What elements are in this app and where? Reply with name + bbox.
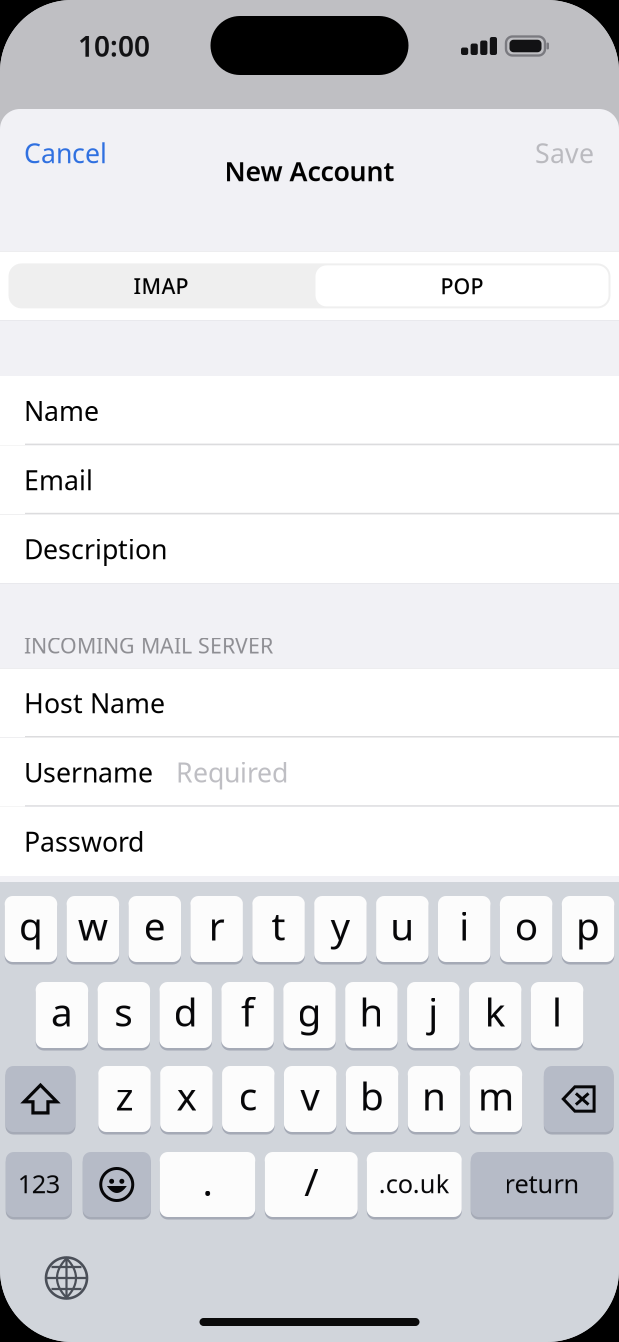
button[interactable]: Emoji xyxy=(83,1152,151,1219)
staticText: j xyxy=(428,986,438,1037)
button[interactable]: o xyxy=(500,896,552,964)
staticText: e xyxy=(144,900,166,951)
staticText: s xyxy=(114,986,133,1037)
staticText: c xyxy=(239,1070,258,1121)
button[interactable]: g xyxy=(283,982,336,1050)
button[interactable]: k xyxy=(469,982,521,1050)
staticText: v xyxy=(300,1070,320,1121)
staticText: r xyxy=(209,900,225,951)
button[interactable]: Save xyxy=(517,130,619,176)
button[interactable]: y xyxy=(314,896,367,964)
button[interactable]: . xyxy=(160,1152,255,1219)
staticText: i xyxy=(459,900,469,951)
button[interactable]: v xyxy=(284,1066,336,1134)
staticText: t xyxy=(271,900,285,951)
button[interactable]: Email xyxy=(0,445,619,514)
staticText: / xyxy=(304,1155,318,1207)
button[interactable]: Next keyboard xyxy=(46,1257,87,1298)
button[interactable]: j xyxy=(407,982,459,1050)
staticText: IMAP xyxy=(133,272,188,300)
button[interactable]: Name xyxy=(0,376,619,445)
staticText: Host Name xyxy=(24,685,165,721)
staticText: u xyxy=(390,900,414,951)
button[interactable]: x xyxy=(160,1066,213,1134)
button[interactable]: h xyxy=(345,982,398,1050)
button[interactable]: n xyxy=(408,1066,460,1134)
staticText: 10:00 xyxy=(78,27,150,65)
staticText: p xyxy=(576,900,600,951)
button[interactable]: Shift xyxy=(5,1066,75,1134)
button[interactable]: Password xyxy=(0,807,619,876)
staticText: Password xyxy=(24,824,144,859)
button[interactable]: Host Name xyxy=(0,668,619,738)
staticText: l xyxy=(552,986,562,1037)
button[interactable]: POP xyxy=(313,263,610,308)
button[interactable]: return xyxy=(471,1152,613,1219)
button[interactable]: a xyxy=(36,982,88,1050)
button[interactable]: b xyxy=(346,1066,398,1134)
button[interactable]: IMAP xyxy=(8,263,313,308)
button[interactable]: d xyxy=(159,982,212,1050)
staticText: m xyxy=(478,1070,514,1121)
button[interactable]: u xyxy=(376,896,429,964)
button[interactable]: r xyxy=(190,896,243,964)
button[interactable]: Username xyxy=(0,738,619,807)
staticText: w xyxy=(78,900,108,951)
staticText: k xyxy=(485,986,506,1037)
staticText: d xyxy=(174,986,198,1037)
staticText: . xyxy=(202,1155,212,1207)
staticText: Required xyxy=(176,754,288,790)
button[interactable]: Delete xyxy=(544,1066,613,1134)
staticText: b xyxy=(360,1070,384,1121)
staticText: z xyxy=(115,1070,133,1121)
button[interactable]: q xyxy=(5,896,57,964)
staticText: 123 xyxy=(18,1167,60,1200)
button[interactable]: e xyxy=(128,896,181,964)
button[interactable]: m xyxy=(470,1066,522,1134)
staticText: Description xyxy=(24,531,167,567)
button[interactable]: s xyxy=(97,982,150,1050)
button[interactable]: l xyxy=(531,982,583,1050)
staticText: .co.uk xyxy=(379,1167,450,1200)
staticText: a xyxy=(51,986,73,1037)
button[interactable]: f xyxy=(221,982,274,1050)
staticText: return xyxy=(504,1167,579,1200)
staticText: h xyxy=(359,986,383,1037)
button[interactable]: .co.uk xyxy=(367,1152,462,1219)
staticText: New Account xyxy=(224,153,394,189)
staticText: Cancel xyxy=(24,135,107,171)
button[interactable]: w xyxy=(67,896,119,964)
staticText: y xyxy=(330,900,350,951)
staticText: n xyxy=(422,1070,446,1121)
staticText: Name xyxy=(24,393,99,428)
button[interactable]: z xyxy=(98,1066,151,1134)
button[interactable]: Description xyxy=(0,514,619,584)
staticText: f xyxy=(241,986,254,1037)
staticText: x xyxy=(176,1070,196,1121)
staticText: Save xyxy=(535,135,594,171)
staticText: Username xyxy=(24,754,153,790)
staticText: q xyxy=(19,900,43,951)
staticText: POP xyxy=(440,272,483,300)
button[interactable]: Cancel xyxy=(0,130,125,176)
staticText: Email xyxy=(24,462,93,497)
staticText: o xyxy=(515,900,538,951)
staticText: g xyxy=(297,986,321,1037)
button[interactable]: c xyxy=(222,1066,274,1134)
button[interactable]: t xyxy=(252,896,305,964)
button[interactable]: p xyxy=(562,896,614,964)
button[interactable]: 123 xyxy=(6,1152,72,1219)
button[interactable]: / xyxy=(265,1152,358,1219)
staticText: INCOMING MAIL SERVER xyxy=(24,631,273,659)
button[interactable]: i xyxy=(438,896,490,964)
